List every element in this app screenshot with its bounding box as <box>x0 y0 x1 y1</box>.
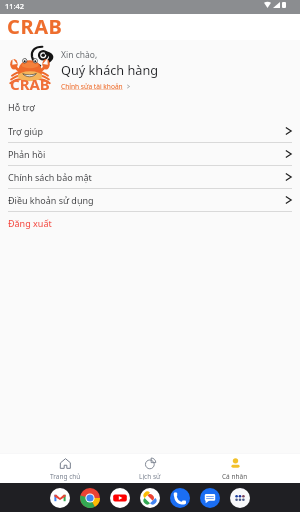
button[interactable]: Trợ giúp <box>0 120 300 143</box>
staticText: Hỗ trợ <box>8 101 35 113</box>
staticText: Xin chào, <box>61 49 98 61</box>
button[interactable]: Photos <box>140 488 160 508</box>
button[interactable]: Chính sách bảo mật <box>0 166 300 189</box>
button[interactable]: Phản hồi <box>0 143 300 166</box>
staticText: Quý khách hàng <box>61 61 159 78</box>
other: Cá nhân <box>230 458 241 469</box>
staticText: Trang chủ <box>50 472 81 481</box>
button[interactable]: Messages <box>200 488 220 508</box>
button[interactable]: Cá nhân <box>192 454 277 483</box>
other: Lịch sử <box>145 458 156 469</box>
button[interactable]: App drawer <box>230 488 250 508</box>
other: Trang chủ <box>60 458 71 469</box>
staticText: CRAB <box>7 13 63 39</box>
staticText: Trợ giúp <box>8 125 43 137</box>
button[interactable]: Đăng xuất <box>0 212 300 234</box>
button[interactable]: Chỉnh sửa tài khoản <box>61 82 131 91</box>
button[interactable]: Trang chủ <box>23 454 107 483</box>
staticText: Cá nhân <box>222 472 248 481</box>
staticText: 11:42 <box>5 1 24 11</box>
staticText: Lịch sử <box>139 472 161 481</box>
staticText: Đăng xuất <box>8 217 52 229</box>
staticText: CRAB <box>10 74 50 94</box>
staticText: Chỉnh sửa tài khoản <box>61 82 123 91</box>
button[interactable]: YouTube <box>110 488 130 508</box>
button[interactable]: Điều khoản sử dụng <box>0 189 300 212</box>
button[interactable]: Phone <box>170 488 190 508</box>
staticText: Chính sách bảo mật <box>8 171 92 183</box>
button[interactable]: Gmail <box>50 488 70 508</box>
button[interactable]: Chrome <box>80 488 100 508</box>
button[interactable]: Lịch sử <box>107 454 192 483</box>
staticText: Điều khoản sử dụng <box>8 194 94 206</box>
staticText: Phản hồi <box>8 148 46 160</box>
